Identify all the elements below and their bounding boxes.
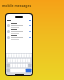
button[interactable]: Keyboard <box>6 53 32 73</box>
staticText: mobile messages <box>2 3 32 8</box>
button[interactable] <box>7 22 31 28</box>
button[interactable] <box>7 28 31 34</box>
button[interactable] <box>7 34 31 40</box>
